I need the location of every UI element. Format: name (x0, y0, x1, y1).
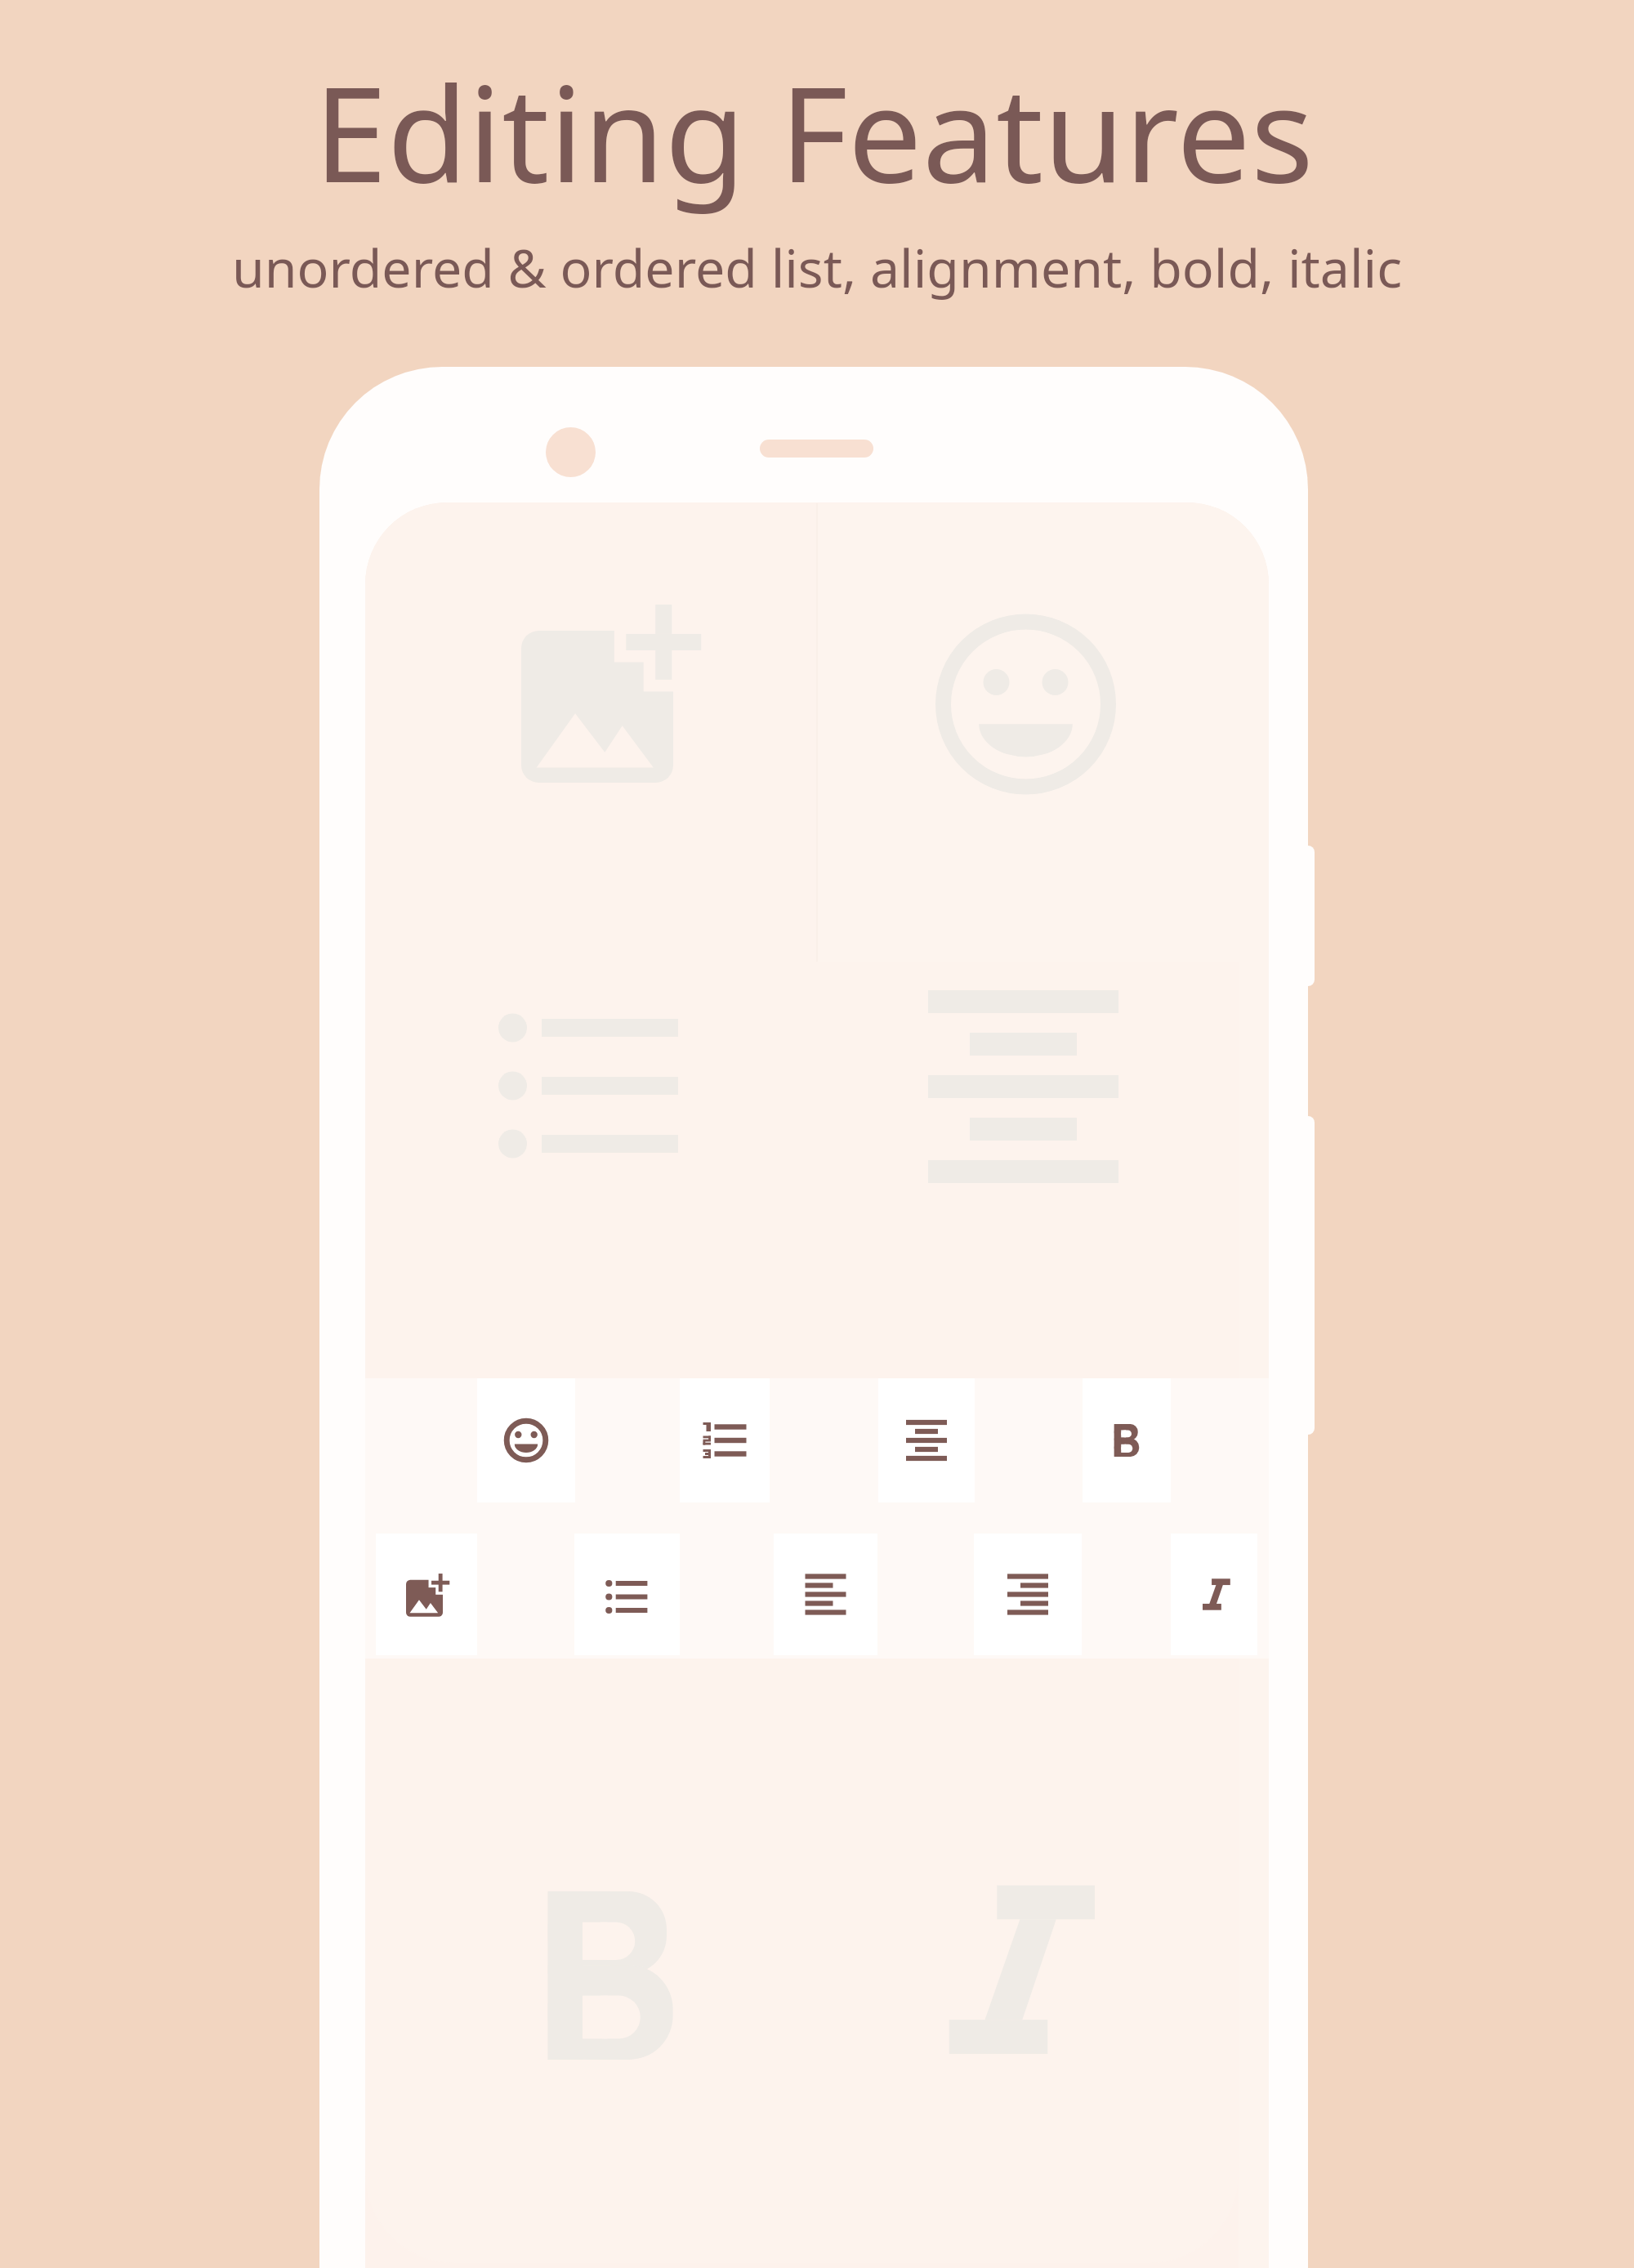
button[interactable]: Italic (1171, 1534, 1257, 1655)
button[interactable]: Emoji (477, 1378, 575, 1502)
staticText: Editing Features (0, 42, 1631, 221)
button[interactable]: Bold (1083, 1378, 1171, 1502)
button[interactable]: Align left (774, 1534, 877, 1655)
button[interactable]: Insert image (376, 1534, 477, 1655)
button[interactable]: Numbered list (680, 1378, 770, 1502)
button[interactable]: Align centre (878, 1378, 975, 1502)
staticText: unordered & ordered list, alignment, bol… (0, 231, 1634, 303)
button[interactable]: Align right (974, 1534, 1082, 1655)
button[interactable]: Bulleted list (574, 1534, 680, 1655)
